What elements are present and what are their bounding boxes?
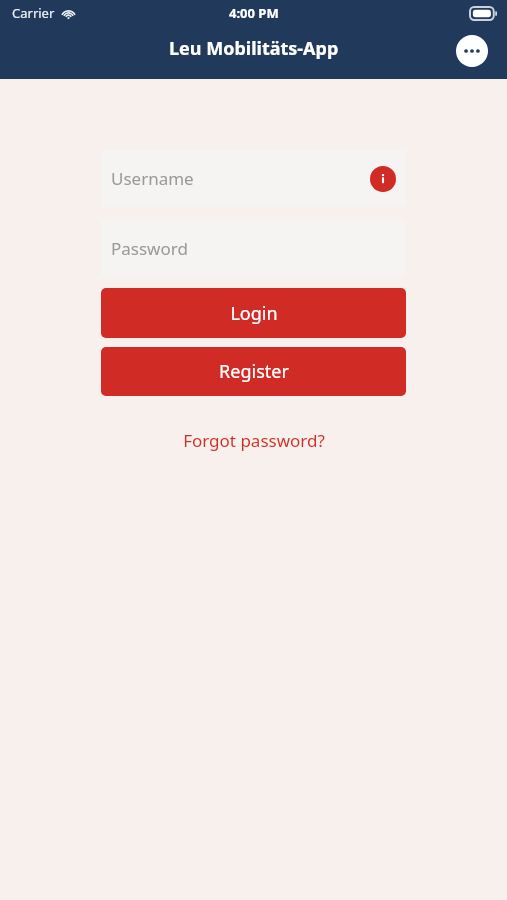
button[interactable]: Username info <box>370 166 396 192</box>
button[interactable]: Login <box>101 288 406 338</box>
button[interactable]: Forgot password? <box>101 425 406 455</box>
button[interactable]: Password <box>101 219 406 277</box>
staticText: Carrier <box>12 4 55 22</box>
staticText: Register <box>219 359 289 384</box>
staticText: 4:00 PM <box>229 4 279 22</box>
button[interactable]: Register <box>101 347 406 396</box>
staticText: Login <box>230 301 278 326</box>
button[interactable]: Username <box>101 150 406 207</box>
staticText: Username <box>111 167 194 190</box>
staticText: Forgot password? <box>183 429 325 452</box>
staticText: Password <box>111 237 188 260</box>
staticText: Leu Mobilitäts-App <box>169 36 339 61</box>
button[interactable]: More options <box>456 35 488 67</box>
